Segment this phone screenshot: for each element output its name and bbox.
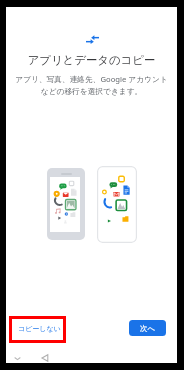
staticText: コピーしない: [18, 324, 61, 333]
button[interactable]: 次へ: [129, 320, 166, 336]
button[interactable]: コピーしない: [12, 316, 66, 340]
other: Back: [40, 353, 50, 363]
staticText: 次へ: [140, 324, 155, 333]
staticText: アプリとデータのコピー: [6, 53, 177, 67]
staticText: アプリ、写真、連絡先、Google アカウント などの移行を選択できます。: [6, 74, 177, 97]
other: Hide keyboard: [13, 354, 22, 363]
